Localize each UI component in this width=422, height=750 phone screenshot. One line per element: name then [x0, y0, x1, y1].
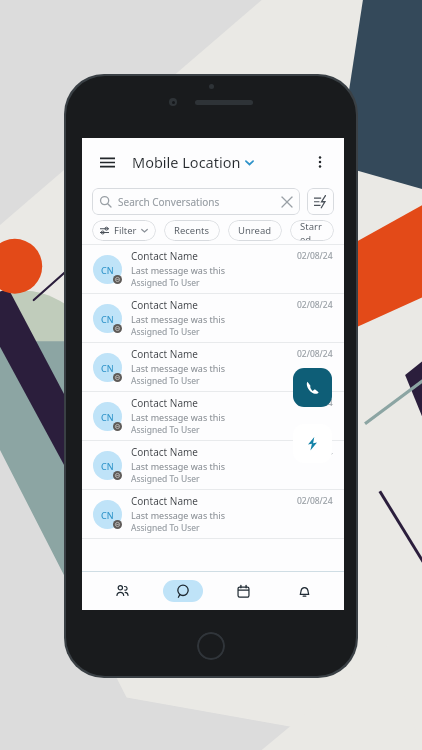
staticText: Starred: [300, 220, 324, 241]
staticText: Recents: [174, 224, 210, 237]
staticText: 02/08/24: [297, 250, 333, 262]
staticText: CN: [101, 362, 114, 374]
staticText: Search Conversations: [118, 195, 220, 209]
staticText: CN: [101, 411, 114, 423]
staticText: Contact Name: [131, 347, 198, 361]
staticText: Assigned To User: [131, 522, 200, 534]
staticText: Contact Name: [131, 298, 198, 312]
staticText: Filter: [114, 224, 137, 237]
button[interactable]: Mobile Location: [132, 152, 254, 172]
button[interactable]: Messages: [163, 580, 203, 602]
staticText: 02/08/24: [297, 446, 333, 458]
button[interactable]: CN: [82, 392, 344, 441]
staticText: Last message was this: [131, 264, 225, 276]
staticText: Contact Name: [131, 494, 198, 508]
button[interactable]: Starred: [290, 220, 334, 241]
staticText: 02/08/24: [297, 348, 333, 360]
staticText: 02/08/24: [297, 397, 333, 409]
staticText: Assigned To User: [131, 375, 200, 387]
button[interactable]: CN: [82, 441, 344, 490]
button[interactable]: Calendar: [223, 580, 263, 602]
button[interactable]: Unread: [228, 220, 282, 241]
staticText: Last message was this: [131, 362, 225, 374]
staticText: Contact Name: [131, 249, 198, 263]
staticText: Last message was this: [131, 460, 225, 472]
staticText: Contact Name: [131, 396, 198, 410]
button[interactable]: CN: [82, 245, 344, 294]
button[interactable]: CN: [82, 294, 344, 343]
button[interactable]: Filter actions: [307, 188, 334, 215]
staticText: Last message was this: [131, 411, 225, 423]
staticText: Contact Name: [131, 445, 198, 459]
button[interactable]: Notifications: [284, 580, 324, 602]
staticText: 02/08/24: [297, 299, 333, 311]
staticText: Assigned To User: [131, 424, 200, 436]
staticText: 02/08/24: [297, 495, 333, 507]
staticText: Assigned To User: [131, 473, 200, 485]
staticText: CN: [101, 509, 114, 521]
button[interactable]: Call: [293, 368, 332, 407]
staticText: CN: [101, 460, 114, 472]
staticText: CN: [101, 264, 114, 276]
button[interactable]: Filter: [92, 220, 156, 241]
button[interactable]: Contacts: [102, 580, 142, 602]
button[interactable]: CN: [82, 490, 344, 539]
staticText: Last message was this: [131, 509, 225, 521]
staticText: Last message was this: [131, 313, 225, 325]
button[interactable]: Search Conversations: [92, 188, 300, 215]
staticText: Mobile Location: [132, 152, 241, 172]
staticText: Assigned To User: [131, 277, 200, 289]
button[interactable]: Menu: [94, 149, 120, 175]
staticText: Unread: [238, 224, 272, 237]
button[interactable]: CN: [82, 343, 344, 392]
staticText: Assigned To User: [131, 326, 200, 338]
button[interactable]: Recents: [164, 220, 220, 241]
button[interactable]: More options: [308, 150, 332, 174]
staticText: CN: [101, 313, 114, 325]
button[interactable]: Quick action: [293, 424, 332, 463]
